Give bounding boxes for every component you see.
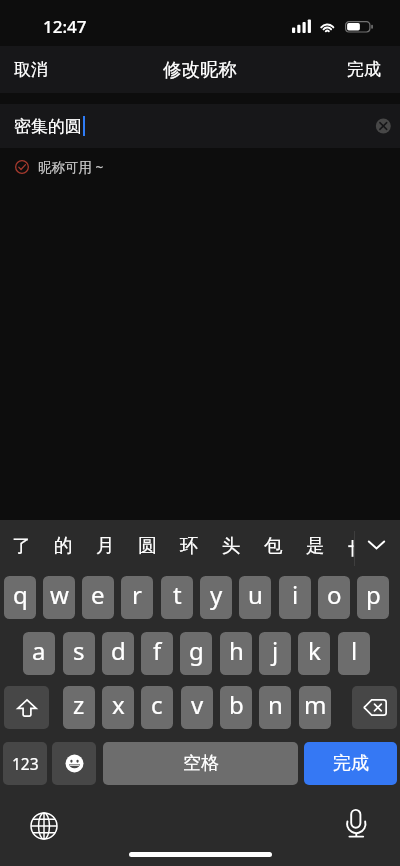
button[interactable]: v: [181, 686, 213, 729]
staticText: q: [13, 578, 28, 611]
button[interactable]: 圆: [131, 528, 163, 562]
button[interactable]: x: [102, 686, 134, 729]
staticText: 圆: [138, 534, 157, 557]
staticText: 包: [264, 534, 283, 557]
staticText: k: [308, 634, 321, 667]
staticText: 空格: [183, 752, 219, 775]
staticText: w: [50, 578, 69, 611]
button[interactable]: l: [338, 632, 370, 675]
button[interactable]: 是: [299, 528, 331, 562]
staticText: 是: [306, 534, 325, 557]
button[interactable]: o: [318, 576, 350, 619]
button[interactable]: 完成: [304, 742, 397, 785]
staticText: v: [191, 688, 204, 721]
staticText: 月: [96, 534, 115, 557]
button[interactable]: m: [299, 686, 331, 729]
button[interactable]: Emoji keyboard: [52, 742, 96, 785]
staticText: m: [304, 688, 327, 721]
staticText: 取消: [14, 59, 48, 80]
staticText: j: [272, 634, 279, 667]
staticText: p: [366, 578, 381, 611]
button[interactable]: w: [43, 576, 75, 619]
staticText: 了: [12, 534, 31, 557]
button[interactable]: h: [220, 632, 252, 675]
staticText: 12:47: [43, 15, 87, 38]
staticText: 昵称可用 ~: [38, 158, 104, 176]
button[interactable]: Voice input: [340, 804, 373, 844]
button[interactable]: q: [4, 576, 36, 619]
button[interactable]: 月: [89, 528, 121, 562]
button[interactable]: j: [259, 632, 291, 675]
staticText: y: [210, 578, 223, 611]
button[interactable]: 123: [3, 742, 47, 785]
staticText: d: [111, 634, 126, 667]
staticText: i: [292, 578, 299, 611]
button[interactable]: Switch keyboard language: [27, 809, 61, 843]
staticText: 修改昵称: [163, 58, 237, 81]
button[interactable]: g: [180, 632, 212, 675]
button[interactable]: 环: [173, 528, 205, 562]
button[interactable]: y: [200, 576, 232, 619]
staticText: g: [189, 634, 204, 667]
button[interactable]: t: [161, 576, 193, 619]
button[interactable]: 取消: [0, 47, 62, 92]
button[interactable]: 包: [257, 528, 289, 562]
button[interactable]: u: [239, 576, 271, 619]
staticText: h: [229, 634, 244, 667]
staticText: a: [32, 634, 46, 667]
button[interactable]: e: [82, 576, 114, 619]
button[interactable]: k: [298, 632, 330, 675]
staticText: r: [132, 578, 142, 611]
staticText: x: [112, 688, 125, 721]
button[interactable]: 头: [215, 528, 247, 562]
staticText: b: [229, 688, 244, 721]
staticText: 完成: [333, 752, 369, 775]
button[interactable]: 了: [5, 528, 37, 562]
staticText: n: [268, 688, 283, 721]
button[interactable]: s: [63, 632, 95, 675]
button[interactable]: Collapse keyboard suggestions: [362, 530, 391, 559]
button[interactable]: Shift: [4, 686, 49, 729]
button[interactable]: f: [141, 632, 173, 675]
staticText: c: [151, 688, 163, 721]
button[interactable]: n: [259, 686, 291, 729]
staticText: 密集的圆: [14, 116, 82, 137]
staticText: 头: [222, 534, 241, 557]
staticText: o: [327, 578, 342, 611]
button[interactable]: b: [220, 686, 252, 729]
staticText: e: [91, 578, 105, 611]
button[interactable]: 空格: [103, 742, 298, 785]
staticText: t: [173, 578, 182, 611]
staticText: 123: [12, 753, 39, 774]
staticText: l: [351, 634, 358, 667]
button[interactable]: p: [357, 576, 389, 619]
button[interactable]: i: [279, 576, 311, 619]
button[interactable]: 完成: [333, 47, 400, 92]
staticText: 环: [180, 534, 199, 557]
button[interactable]: z: [63, 686, 95, 729]
button[interactable]: r: [121, 576, 153, 619]
staticText: z: [73, 688, 85, 721]
button[interactable]: a: [23, 632, 55, 675]
staticText: 完成: [347, 59, 381, 80]
staticText: u: [248, 578, 263, 611]
staticText: f: [153, 634, 162, 667]
button[interactable]: d: [102, 632, 134, 675]
button[interactable]: c: [141, 686, 173, 729]
staticText: 的: [54, 534, 73, 557]
button[interactable]: 的: [47, 528, 79, 562]
button[interactable]: Backspace: [352, 686, 397, 729]
staticText: s: [73, 634, 85, 667]
button[interactable]: Clear text: [368, 110, 400, 142]
